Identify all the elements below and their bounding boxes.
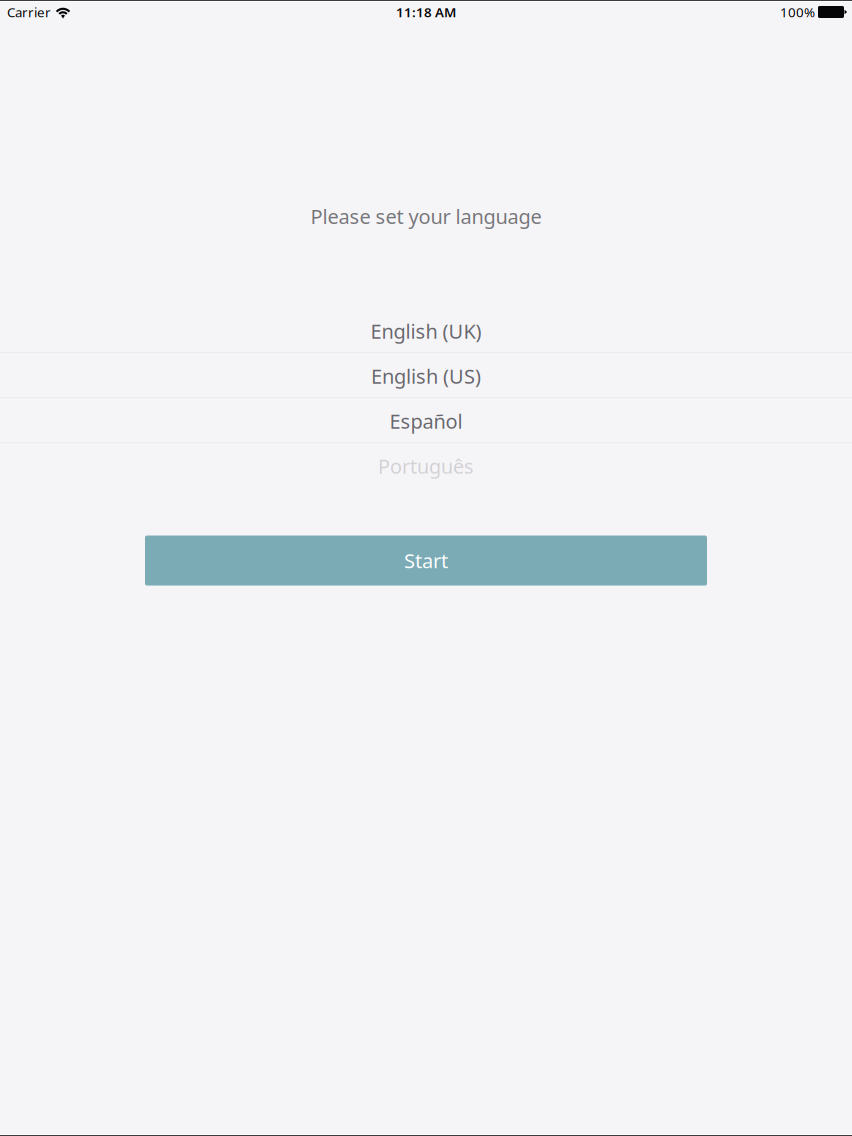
button[interactable]: English (UK) <box>0 310 852 353</box>
button[interactable]: Español <box>0 400 852 443</box>
staticText: English (UK) <box>370 318 481 344</box>
button[interactable]: Start <box>145 536 707 586</box>
staticText: Start <box>404 547 448 574</box>
staticText: 100% <box>780 3 815 21</box>
staticText: 11:18 AM <box>396 3 456 21</box>
button[interactable]: English (US) <box>0 355 852 398</box>
staticText: Português <box>378 453 474 479</box>
staticText: Please set your language <box>310 203 541 230</box>
staticText: Carrier <box>7 3 51 21</box>
staticText: English (US) <box>371 363 481 389</box>
staticText: Español <box>389 408 462 434</box>
button[interactable]: Português <box>0 445 852 488</box>
